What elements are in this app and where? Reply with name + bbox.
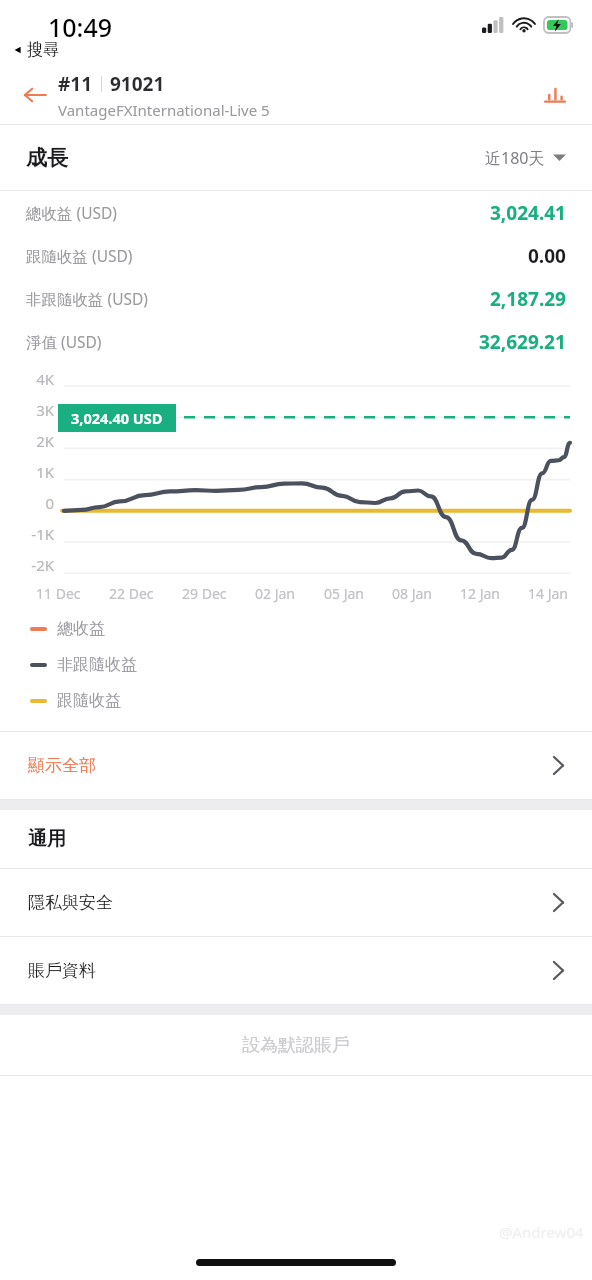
staticText: 非跟隨收益 [57, 655, 137, 675]
staticText: -1K [14, 524, 54, 544]
staticText: 11 Dec [36, 584, 81, 603]
staticText: 搜尋 [27, 40, 59, 60]
staticText: VantageFXInternational-Live 5 [58, 100, 270, 120]
staticText: -2K [14, 555, 54, 575]
staticText: 1K [14, 462, 54, 482]
staticText: 2K [14, 431, 54, 451]
staticText: 3K [14, 400, 54, 420]
staticText: 08 Jan [392, 584, 432, 603]
staticText: 設為默認賬戶 [242, 1034, 350, 1057]
staticText: 通用 [28, 827, 66, 851]
staticText: 05 Jan [324, 584, 364, 603]
button[interactable]: Statistics [536, 76, 574, 114]
button[interactable]: Back [0, 66, 592, 124]
button[interactable]: Back [18, 78, 52, 112]
staticText: 3,024.41 [490, 200, 566, 226]
staticText: 成長 [26, 145, 68, 171]
staticText: 14 Jan [528, 584, 568, 603]
staticText: 顯示全部 [28, 755, 96, 776]
staticText: 總收益 (USD) [26, 202, 117, 223]
staticText: 0.00 [528, 243, 566, 269]
staticText: 跟隨收益 [57, 691, 121, 711]
button[interactable]: 賬戶資料 [0, 937, 592, 1004]
staticText: 賬戶資料 [28, 960, 96, 981]
staticText: #11 [58, 71, 93, 97]
staticText: 10:49 [48, 10, 113, 44]
staticText: 22 Dec [109, 584, 154, 603]
staticText: 隱私與安全 [28, 892, 113, 913]
staticText: 91021 [110, 71, 165, 97]
staticText: 3,024.40 USD [71, 408, 163, 428]
button[interactable]: 設為默認賬戶 [0, 1015, 592, 1075]
button[interactable]: 顯示全部 [0, 732, 592, 799]
staticText: 跟隨收益 (USD) [26, 245, 133, 266]
button[interactable]: 隱私與安全 [0, 869, 592, 936]
staticText: 32,629.21 [479, 329, 566, 355]
staticText: 2,187.29 [490, 286, 566, 312]
staticText: 總收益 [57, 619, 105, 639]
staticText: 4K [14, 369, 54, 389]
staticText: 淨值 (USD) [26, 331, 102, 352]
staticText: 02 Jan [255, 584, 295, 603]
staticText: 非跟隨收益 (USD) [26, 288, 148, 309]
staticText: 近180天 [485, 147, 545, 169]
staticText: 29 Dec [182, 584, 227, 603]
staticText: @Andrew04 [499, 1222, 584, 1242]
button[interactable]: 成長 [0, 125, 592, 190]
staticText: 0 [14, 493, 54, 513]
staticText: 12 Jan [460, 584, 500, 603]
